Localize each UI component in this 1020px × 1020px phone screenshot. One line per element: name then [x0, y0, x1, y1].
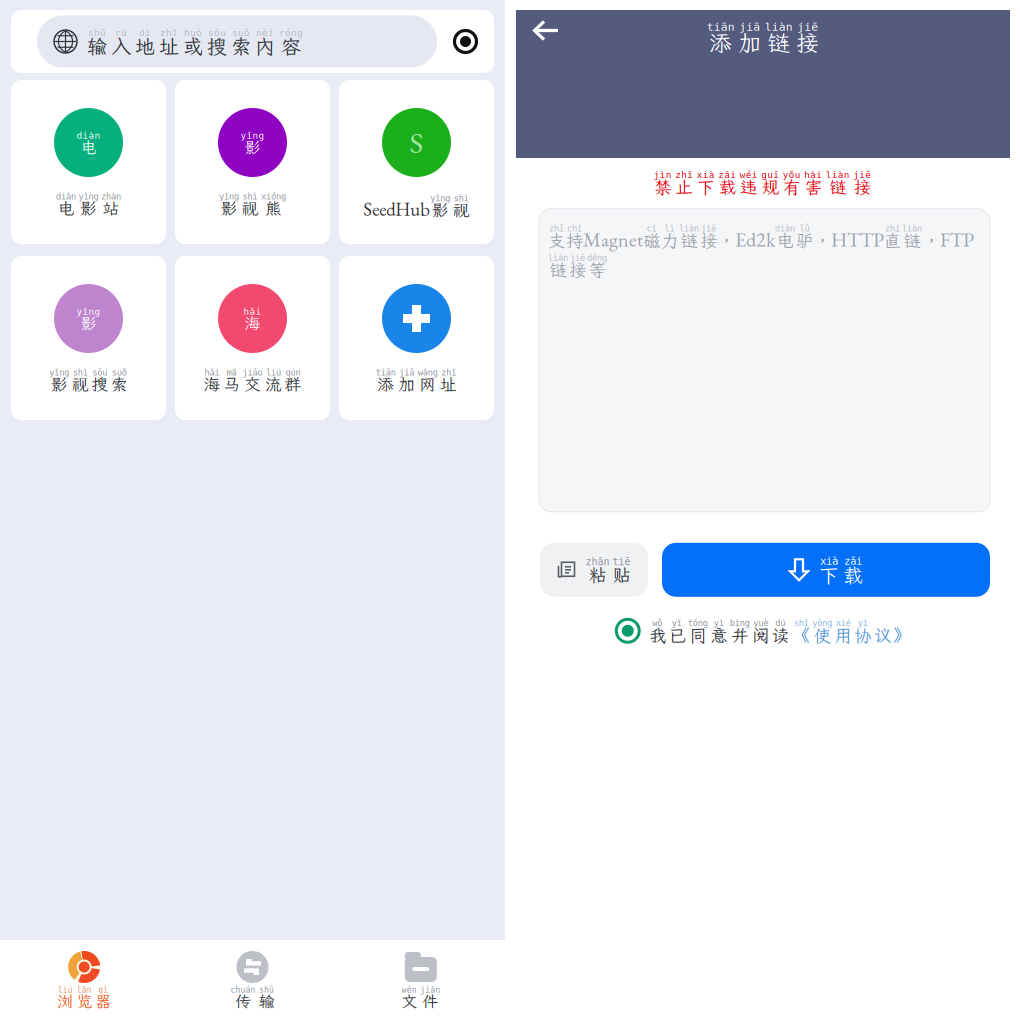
staticText: 载	[843, 562, 863, 588]
staticText: jiē	[853, 169, 871, 180]
button[interactable]: wén	[337, 951, 505, 1008]
button[interactable]: xià	[662, 543, 990, 597]
staticText: 输	[258, 991, 274, 1012]
staticText: 影	[432, 199, 449, 221]
button[interactable]: S	[339, 80, 494, 244]
staticText: wǒ	[652, 618, 662, 628]
staticText: 索	[231, 33, 251, 59]
staticText: 读	[772, 624, 789, 647]
staticText: hǎi	[243, 306, 261, 317]
button[interactable]: yǐng	[11, 256, 166, 420]
staticText: yuè	[753, 618, 768, 628]
staticText: 容	[281, 33, 301, 59]
staticText: 持	[566, 229, 583, 252]
staticText: 输	[87, 33, 107, 59]
staticText: 违	[740, 176, 757, 198]
staticText: wéi	[740, 169, 758, 180]
staticText: xióng	[261, 191, 286, 201]
staticText: cí	[646, 223, 656, 234]
staticText: dì	[139, 27, 151, 38]
staticText: 影	[220, 197, 237, 219]
staticText: chí	[567, 223, 582, 234]
staticText: 接	[854, 176, 871, 198]
button[interactable]: Record	[437, 15, 494, 67]
staticText: shì	[242, 191, 257, 201]
staticText: 添	[377, 373, 394, 395]
staticText: 或	[183, 33, 203, 59]
staticText: 影	[244, 137, 260, 158]
staticText: yǐng	[78, 191, 98, 201]
button[interactable]: Back	[516, 10, 569, 51]
staticText: 入	[111, 33, 131, 59]
staticText: nèi	[256, 27, 274, 38]
staticText: zhǐ	[675, 169, 693, 180]
staticText: chuán	[230, 985, 255, 995]
staticText: jiàn	[420, 985, 440, 995]
staticText: 电	[80, 137, 96, 158]
staticText: jiē	[570, 253, 585, 263]
staticText: 影	[51, 373, 68, 395]
staticText: 《	[793, 624, 810, 647]
staticText: 视	[72, 373, 89, 395]
staticText: 使	[814, 624, 831, 647]
staticText: 链	[680, 229, 697, 252]
staticText: 链	[767, 28, 790, 57]
staticText: mǎ	[226, 367, 236, 377]
staticText: 并	[731, 624, 748, 647]
staticText: 力	[661, 229, 678, 252]
button[interactable]: yǐng	[175, 80, 330, 244]
button[interactable]: tiān	[339, 256, 494, 420]
staticText: jìn	[654, 169, 672, 180]
staticText: zǎi	[844, 555, 862, 567]
staticText: shì	[73, 367, 88, 377]
staticText: ，	[923, 229, 940, 252]
staticText: huò	[184, 27, 202, 38]
staticText: 加	[398, 373, 415, 395]
staticText: diàn	[775, 223, 795, 234]
staticText: tiān	[707, 20, 735, 33]
staticText: qì	[98, 985, 108, 995]
staticText: 海	[244, 313, 260, 334]
staticText: tiē	[612, 556, 630, 568]
button[interactable]: shū	[37, 15, 437, 67]
staticText: 粘	[588, 563, 606, 587]
staticText: 影	[80, 313, 96, 334]
button[interactable]: zhān	[540, 543, 648, 597]
button[interactable]: hǎi	[175, 256, 330, 420]
staticText: liàn	[902, 223, 922, 234]
staticText: 电	[776, 229, 793, 252]
staticText: sōu	[92, 367, 107, 377]
staticText: 接	[796, 28, 819, 57]
staticText: 害	[805, 176, 822, 198]
staticText: 等	[588, 258, 605, 281]
staticText: 直	[884, 229, 901, 252]
staticText: ，	[814, 229, 831, 252]
button[interactable]: chuán	[168, 951, 337, 1008]
staticText: diàn	[56, 191, 76, 201]
staticText: 影	[80, 197, 97, 219]
staticText: zhān	[585, 556, 609, 568]
button[interactable]: liú	[0, 951, 168, 1008]
staticText: lì	[664, 223, 674, 234]
staticText: S	[409, 123, 423, 162]
staticText: 交	[244, 373, 261, 395]
staticText: xià	[820, 555, 838, 567]
button[interactable]: diàn	[11, 80, 166, 244]
staticText: 协	[854, 624, 871, 647]
staticText: 规	[762, 176, 779, 198]
staticText: róng	[279, 27, 303, 38]
staticText: shū	[88, 27, 106, 38]
staticText: 视	[241, 197, 258, 219]
staticText: 链	[829, 176, 846, 198]
button[interactable]: wǒ	[615, 618, 910, 644]
staticText: lǘ	[799, 223, 809, 234]
staticText: 意	[710, 624, 727, 647]
staticText: 已	[668, 624, 685, 647]
staticText: guī	[761, 169, 779, 180]
staticText: yǐng	[49, 367, 69, 377]
staticText: wén	[402, 985, 417, 995]
